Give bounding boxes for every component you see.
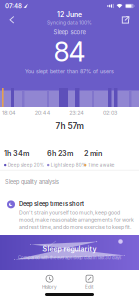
staticText: 84	[53, 36, 85, 68]
staticText: Sleep regularity	[42, 245, 96, 253]
staticText: Time awake	[88, 162, 115, 168]
staticText: 23:24	[69, 109, 84, 116]
staticText: Deep sleep time is short	[19, 200, 84, 207]
button[interactable]: Back	[5, 11, 20, 28]
staticText: Compared with the average sleep data in …	[18, 255, 121, 260]
button[interactable]: Edit	[75, 275, 103, 290]
staticText: Deep sleep 20%	[8, 162, 44, 168]
staticText: 02:03	[103, 109, 117, 116]
staticText: You slept better than 87% of users	[25, 68, 114, 74]
staticText: Syncing data 100%	[47, 20, 92, 26]
staticText: Light sleep 80%	[51, 162, 86, 168]
staticText: 20:44	[35, 109, 51, 116]
staticText: Sleep score	[53, 28, 85, 36]
staticText: 1h 34m	[4, 149, 29, 158]
staticText: 18:04	[2, 109, 16, 116]
staticText: 7h 57m	[55, 121, 83, 131]
button[interactable]: Sleep regularity	[0, 235, 139, 270]
staticText: History	[42, 284, 57, 290]
staticText: 07:48	[5, 2, 22, 10]
staticText: 12 June	[57, 10, 82, 19]
staticText: Sleep quality analysis	[5, 179, 59, 185]
staticText: Edit	[85, 284, 94, 290]
button[interactable]: Share	[117, 11, 134, 29]
button[interactable]: History	[35, 275, 63, 290]
staticText: Don't strain yourself too much, keep goo…	[19, 209, 134, 230]
staticText: 2 min	[84, 149, 102, 158]
staticText: 6h 23m	[47, 149, 73, 158]
